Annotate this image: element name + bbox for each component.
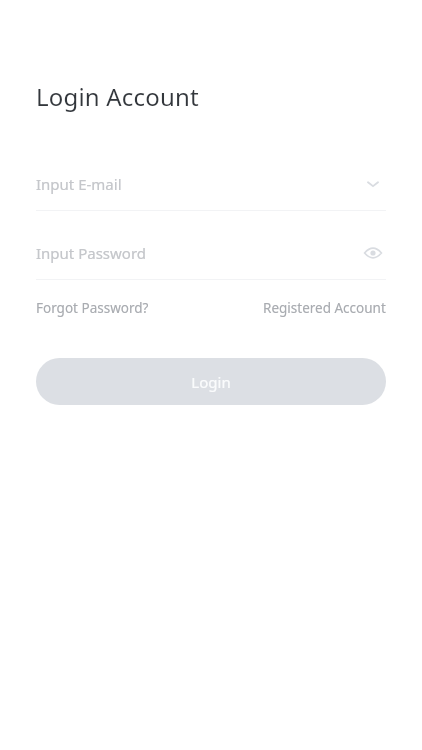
button[interactable]: Registered Account [263, 293, 386, 323]
staticText: Input E-mail [36, 174, 122, 194]
staticText: Login Account [36, 80, 199, 113]
staticText: Input Password [36, 243, 147, 263]
staticText: Forgot Password? [36, 299, 149, 317]
button[interactable]: Forgot Password? [36, 293, 149, 323]
button[interactable]: Input Password [0, 240, 422, 266]
button[interactable]: Show password [360, 240, 386, 266]
button[interactable]: Choose saved e-mail [360, 171, 386, 197]
button[interactable]: Input E-mail [0, 171, 422, 197]
staticText: Registered Account [263, 299, 386, 317]
staticText: Login [191, 372, 231, 392]
button[interactable]: Login [36, 358, 386, 405]
